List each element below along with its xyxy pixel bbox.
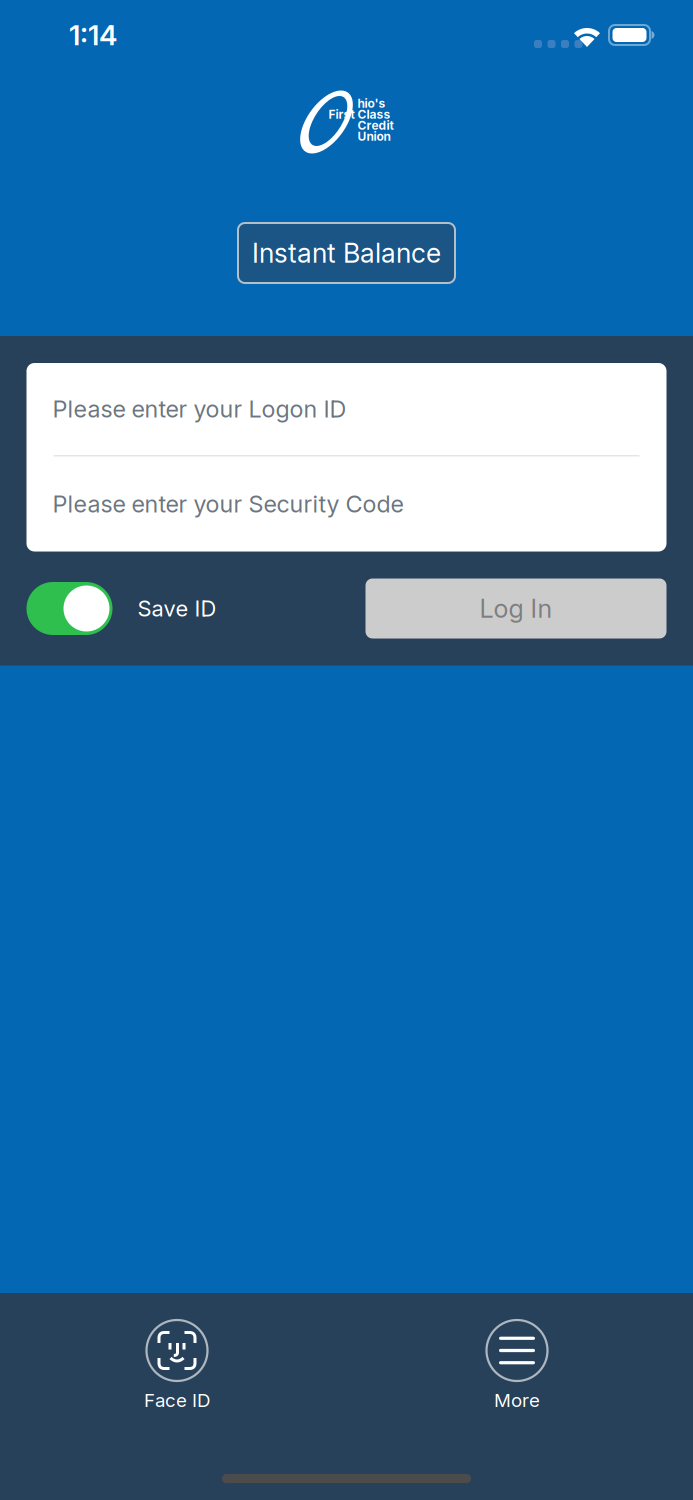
button[interactable]: More [442, 1319, 592, 1412]
staticText: More [494, 1389, 540, 1412]
staticText: Save ID [137, 595, 216, 622]
button[interactable]: Face ID [102, 1319, 252, 1412]
staticText: Instant Balance [252, 237, 441, 269]
staticText: 1:14 [69, 18, 117, 52]
staticText: Class [357, 107, 390, 121]
staticText: Log In [479, 593, 552, 624]
staticText: Please enter your Logon ID [52, 395, 346, 423]
staticText: Please enter your Security Code [52, 490, 403, 518]
button[interactable]: Log In [365, 578, 666, 638]
button[interactable]: Instant Balance [238, 223, 455, 283]
button[interactable]: Please enter your Security Code [26, 456, 666, 551]
button[interactable]: Please enter your Logon ID [26, 363, 666, 455]
staticText: Credit [357, 118, 393, 132]
staticText: Union [357, 129, 390, 143]
staticText: Face ID [144, 1389, 210, 1412]
button[interactable]: Save ID [26, 582, 216, 635]
staticText: First [328, 107, 354, 121]
staticText: hio's [357, 96, 385, 110]
